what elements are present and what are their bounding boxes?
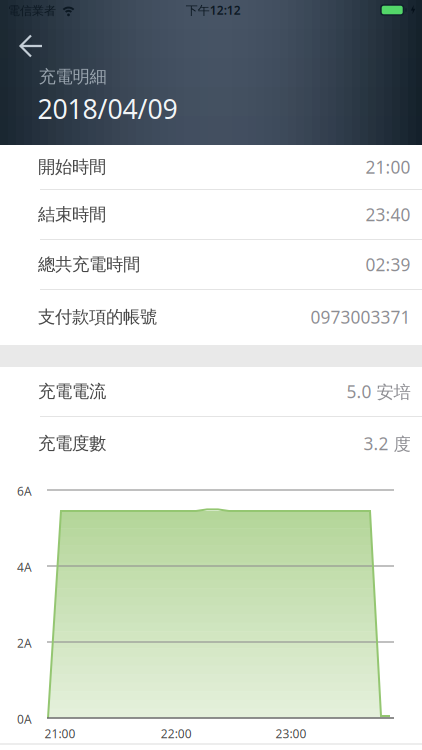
staticText: 2A bbox=[17, 635, 32, 651]
staticText: 6A bbox=[17, 483, 32, 499]
staticText: 總共充電時間 bbox=[38, 254, 140, 275]
staticText: 23:40 bbox=[365, 203, 410, 226]
staticText: 支付款項的帳號 bbox=[38, 306, 157, 328]
button[interactable]: Back bbox=[0, 0, 60, 70]
staticText: 2018/04/09 bbox=[37, 91, 177, 126]
staticText: 0973003371 bbox=[310, 305, 410, 328]
staticText: 5.0 安培 bbox=[346, 380, 410, 403]
staticText: 結束時間 bbox=[38, 204, 106, 225]
staticText: 3.2 度 bbox=[363, 432, 410, 455]
staticText: 充電電流 bbox=[38, 381, 106, 402]
staticText: 21:00 bbox=[44, 726, 75, 742]
staticText: 21:00 bbox=[365, 155, 410, 178]
staticText: 23:00 bbox=[276, 726, 307, 742]
staticText: 0A bbox=[17, 711, 32, 727]
staticText: 充電明細 bbox=[38, 66, 106, 87]
staticText: 電信業者 bbox=[8, 3, 56, 18]
staticText: 下午12:12 bbox=[186, 2, 241, 18]
staticText: 開始時間 bbox=[38, 156, 106, 178]
staticText: 4A bbox=[17, 559, 32, 575]
staticText: 02:39 bbox=[365, 253, 410, 276]
staticText: 22:00 bbox=[161, 726, 192, 742]
staticText: 充電度數 bbox=[38, 433, 106, 454]
